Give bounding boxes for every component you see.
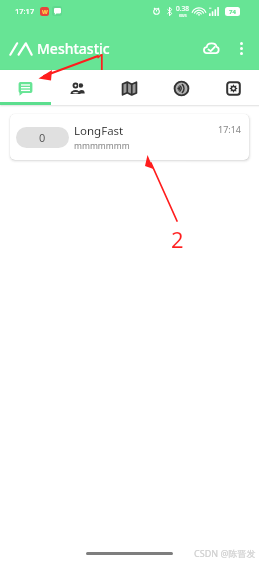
button[interactable]: Contacts	[51, 70, 103, 105]
staticText: LongFast	[74, 123, 124, 139]
staticText: CSDN @陈晋发	[194, 547, 256, 559]
staticText: 74	[229, 8, 236, 16]
button[interactable]: 0	[10, 114, 249, 160]
staticText: KB/S	[179, 13, 187, 18]
staticText: 1	[95, 46, 108, 76]
staticText: W	[42, 8, 48, 16]
staticText: 0	[39, 130, 46, 145]
staticText: 17:17	[15, 6, 35, 16]
staticText: 2	[171, 224, 184, 254]
staticText: Meshtastic	[37, 39, 110, 58]
button[interactable]: Map	[103, 70, 155, 105]
staticText: 17:14	[218, 123, 242, 135]
button[interactable]: Cloud connected	[195, 32, 227, 64]
staticText: mmmmmmm	[74, 140, 130, 152]
button[interactable]: Channels	[155, 70, 207, 105]
button[interactable]: Messages	[0, 70, 51, 105]
button[interactable]: More options	[227, 34, 255, 62]
staticText: 0.38	[176, 4, 189, 13]
button[interactable]: Settings	[207, 70, 259, 105]
